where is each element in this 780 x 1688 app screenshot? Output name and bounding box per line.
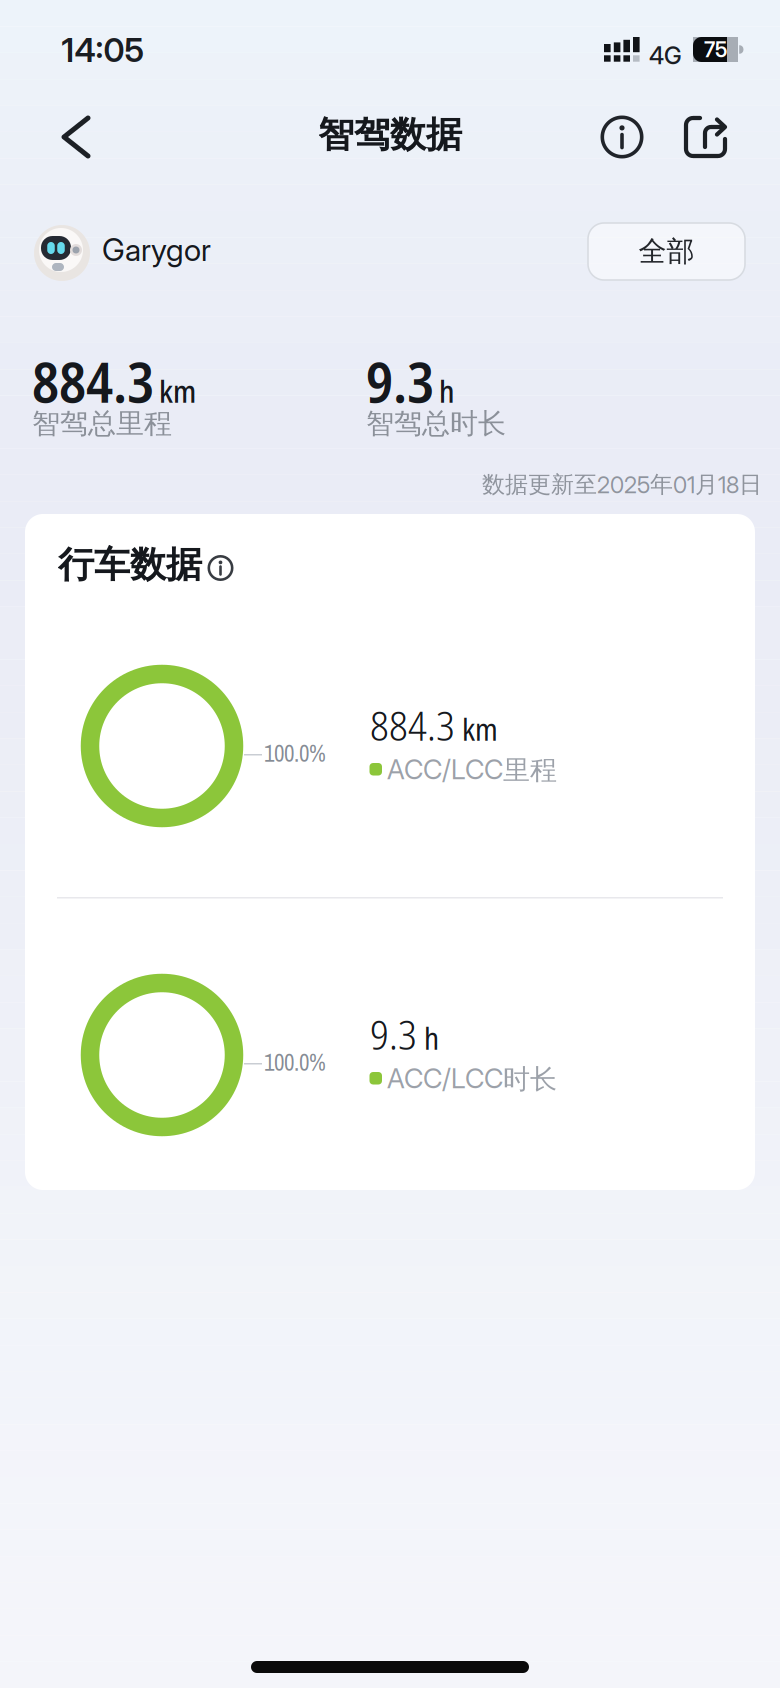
- staticText: 4G: [649, 41, 682, 70]
- button[interactable]: 全部: [588, 223, 745, 280]
- staticText: km: [462, 709, 498, 750]
- staticText: 数据更新至2025年01月18日: [482, 470, 762, 499]
- staticText: h: [424, 1018, 439, 1059]
- staticText: 14:05: [61, 30, 144, 70]
- button[interactable]: Share: [684, 114, 730, 160]
- staticText: 智驾总里程: [32, 406, 172, 441]
- staticText: 75: [704, 37, 727, 62]
- staticText: 智驾数据: [318, 112, 462, 157]
- staticText: 全部: [638, 234, 694, 269]
- staticText: 智驾总时长: [366, 406, 506, 441]
- staticText: ACC/LCC时长: [387, 1062, 557, 1096]
- button[interactable]: Back: [56, 109, 100, 165]
- staticText: Garygor: [102, 231, 211, 268]
- staticText: h: [439, 371, 455, 412]
- staticText: 100.0%: [264, 738, 326, 769]
- staticText: ACC/LCC里程: [387, 753, 557, 787]
- staticText: 100.0%: [264, 1047, 326, 1078]
- staticText: 884.3: [370, 697, 455, 753]
- staticText: 行车数据: [58, 542, 202, 587]
- staticText: 9.3: [370, 1006, 417, 1062]
- button[interactable]: Info: [600, 115, 644, 159]
- staticText: 9.3: [366, 343, 434, 419]
- button[interactable]: Info: [207, 554, 234, 581]
- staticText: 884.3: [32, 343, 154, 419]
- staticText: km: [159, 371, 196, 412]
